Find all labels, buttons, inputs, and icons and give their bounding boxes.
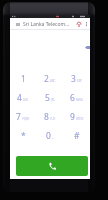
staticText: 6 [70, 92, 75, 104]
staticText: JKL [51, 98, 55, 102]
button[interactable]: 6 [63, 88, 90, 107]
button[interactable]: Backspace [81, 41, 93, 53]
button[interactable]: 0 [36, 126, 63, 145]
button[interactable]: More options [83, 19, 90, 29]
staticText: GHI [23, 98, 29, 102]
staticText: 3 [71, 73, 76, 85]
staticText: 9 [70, 111, 75, 123]
button[interactable]: 9 [63, 107, 90, 126]
staticText: 1 [21, 73, 26, 85]
button[interactable]: 3 [63, 69, 90, 88]
staticText: DEF [77, 79, 83, 83]
button[interactable]: 7 [10, 107, 36, 126]
staticText: 7 [16, 111, 21, 123]
staticText: ABC [50, 79, 56, 83]
staticText: + [52, 136, 54, 140]
staticText: PQRS [22, 117, 30, 121]
button[interactable]: Menu [14, 19, 22, 29]
staticText: MNO [76, 98, 83, 102]
button[interactable]: Call [16, 156, 88, 176]
button[interactable]: 1 [10, 69, 36, 88]
staticText: 4 [17, 92, 22, 104]
staticText: TUV [50, 117, 56, 121]
staticText: * [21, 130, 26, 142]
button[interactable]: Record call [74, 19, 83, 29]
staticText: # [74, 130, 80, 142]
staticText: 8 [44, 111, 49, 123]
staticText: Sri Lanka Telecom... [23, 21, 70, 28]
button[interactable]: # [63, 126, 90, 145]
staticText: 2 [44, 73, 49, 85]
button[interactable]: 2 [36, 69, 63, 88]
button[interactable]: * [10, 126, 36, 145]
staticText: 0 [46, 130, 51, 142]
button[interactable]: 8 [36, 107, 63, 126]
staticText: 5 [45, 92, 50, 104]
button[interactable]: 4 [10, 88, 36, 107]
button[interactable]: 5 [36, 88, 63, 107]
staticText: WXYZ [76, 117, 84, 121]
